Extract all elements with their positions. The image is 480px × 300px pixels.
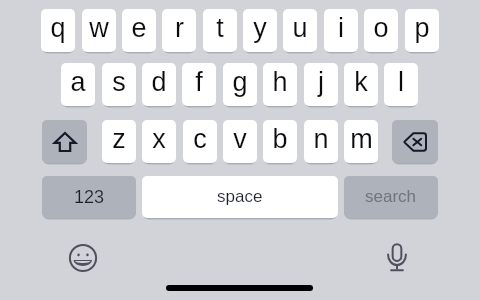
button[interactable]: c bbox=[183, 120, 217, 163]
button[interactable]: u bbox=[283, 9, 317, 52]
button[interactable]: a bbox=[61, 63, 95, 106]
button[interactable]: Emoji keyboard bbox=[64, 240, 101, 276]
button[interactable]: d bbox=[142, 63, 176, 106]
button[interactable]: z bbox=[102, 120, 136, 163]
staticText: l bbox=[398, 67, 404, 97]
button[interactable]: f bbox=[182, 63, 216, 106]
staticText: a bbox=[70, 67, 86, 97]
staticText: i bbox=[338, 13, 344, 43]
staticText: e bbox=[131, 13, 147, 43]
button[interactable]: r bbox=[162, 9, 196, 52]
staticText: v bbox=[233, 124, 247, 154]
staticText: k bbox=[354, 67, 368, 97]
button[interactable]: k bbox=[344, 63, 378, 106]
button[interactable]: s bbox=[102, 63, 136, 106]
button[interactable]: i bbox=[324, 9, 358, 52]
staticText: t bbox=[216, 13, 224, 43]
staticText: z bbox=[112, 124, 126, 154]
staticText: h bbox=[272, 67, 288, 97]
button[interactable]: b bbox=[263, 120, 297, 163]
button[interactable]: t bbox=[203, 9, 237, 52]
button[interactable]: p bbox=[405, 9, 439, 52]
staticText: f bbox=[195, 67, 203, 97]
staticText: d bbox=[151, 67, 167, 97]
staticText: b bbox=[272, 124, 288, 154]
button[interactable]: m bbox=[344, 120, 378, 163]
button[interactable]: y bbox=[243, 9, 277, 52]
button[interactable]: Shift bbox=[42, 120, 87, 163]
staticText: search bbox=[365, 187, 417, 206]
button[interactable]: x bbox=[142, 120, 176, 163]
staticText: u bbox=[292, 13, 308, 43]
staticText: x bbox=[152, 124, 166, 154]
staticText: j bbox=[318, 67, 324, 97]
button[interactable]: v bbox=[223, 120, 257, 163]
button[interactable]: space bbox=[142, 176, 338, 218]
staticText: w bbox=[89, 13, 109, 43]
button[interactable]: h bbox=[263, 63, 297, 106]
button[interactable]: l bbox=[384, 63, 418, 106]
button[interactable]: w bbox=[82, 9, 116, 52]
staticText: g bbox=[232, 67, 248, 97]
staticText: y bbox=[253, 13, 267, 43]
button[interactable]: e bbox=[122, 9, 156, 52]
staticText: space bbox=[217, 187, 263, 206]
button[interactable]: q bbox=[41, 9, 75, 52]
staticText: p bbox=[414, 13, 430, 43]
staticText: r bbox=[175, 13, 184, 43]
staticText: m bbox=[350, 124, 373, 154]
staticText: s bbox=[112, 67, 126, 97]
button[interactable]: Backspace bbox=[392, 120, 438, 163]
staticText: o bbox=[373, 13, 389, 43]
staticText: c bbox=[193, 124, 207, 154]
staticText: 123 bbox=[74, 187, 105, 207]
button[interactable]: n bbox=[304, 120, 338, 163]
staticText: q bbox=[50, 13, 66, 43]
button[interactable]: 123 bbox=[42, 176, 136, 218]
button[interactable]: g bbox=[223, 63, 257, 106]
button[interactable]: j bbox=[304, 63, 338, 106]
staticText: n bbox=[313, 124, 329, 154]
button[interactable]: search bbox=[344, 176, 438, 218]
button[interactable]: Dictation bbox=[378, 240, 415, 276]
button[interactable]: o bbox=[364, 9, 398, 52]
